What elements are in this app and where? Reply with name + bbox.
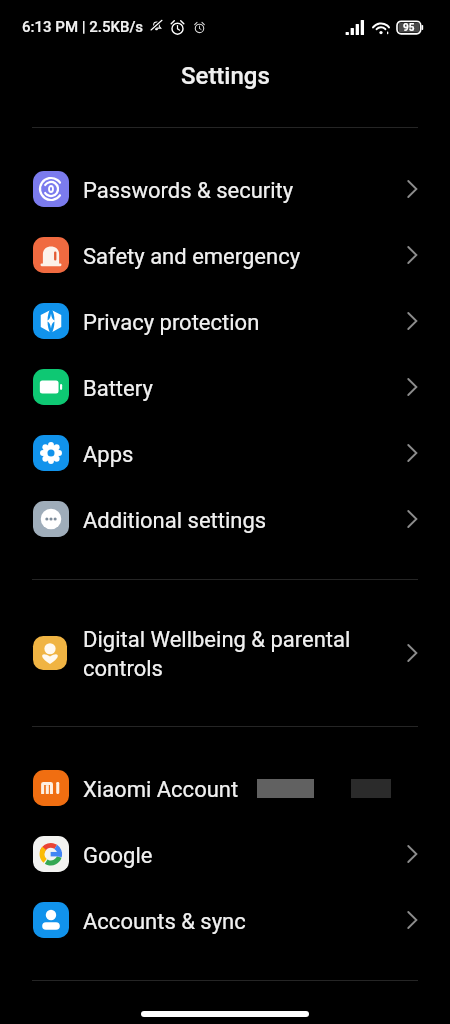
button[interactable]: Accounts & sync (0, 887, 450, 953)
other: Open Apps (401, 442, 423, 464)
staticText: Apps (83, 442, 401, 468)
staticText: Google (83, 843, 401, 869)
staticText: Settings (181, 62, 270, 90)
other: Open Passwords & security (401, 178, 423, 200)
other: Open Privacy protection (401, 310, 423, 332)
button[interactable]: Battery (0, 354, 450, 420)
button[interactable]: Xiaomi Account (0, 755, 450, 821)
staticText: Additional settings (83, 508, 401, 534)
button[interactable]: Apps (0, 420, 450, 486)
staticText: Battery (83, 376, 401, 402)
button[interactable]: Privacy protection (0, 288, 450, 354)
button[interactable]: Safety and emergency (0, 222, 450, 288)
button[interactable]: Digital Wellbeing & parental controls (0, 620, 450, 686)
other: Open Battery (401, 376, 423, 398)
staticText: 6:13 PM | 2.5KB/s (22, 18, 144, 36)
other: Open Google (401, 843, 423, 865)
staticText: Xiaomi Account (83, 777, 239, 803)
staticText: Safety and emergency (83, 244, 401, 270)
other: Open Safety and emergency (401, 244, 423, 266)
staticText: Digital Wellbeing & parental controls (83, 627, 401, 681)
staticText: Privacy protection (83, 310, 401, 336)
staticText: Passwords & security (83, 178, 401, 204)
other: Open Additional settings (401, 508, 423, 530)
staticText: 95 (403, 22, 415, 34)
other: Open Digital Wellbeing & parental contro… (401, 642, 423, 664)
button[interactable]: Passwords & security (0, 156, 450, 222)
staticText: Accounts & sync (83, 909, 401, 935)
other: Open Accounts & sync (401, 909, 423, 931)
button[interactable]: Google (0, 821, 450, 887)
button[interactable]: Additional settings (0, 486, 450, 552)
